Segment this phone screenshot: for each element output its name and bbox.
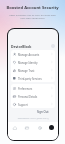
staticText: Manage Accounts xyxy=(18,53,40,56)
staticText: Manage Trust xyxy=(18,69,35,72)
button[interactable]: Account xyxy=(48,124,55,131)
staticText: Support xyxy=(18,103,28,106)
button[interactable]: Sign Out xyxy=(37,110,49,114)
button[interactable]: Home xyxy=(11,124,18,131)
button[interactable]: Manage Trust xyxy=(11,66,55,74)
button[interactable]: Support xyxy=(11,100,55,108)
button[interactable]: Profile xyxy=(51,44,55,48)
button[interactable]: Activity xyxy=(36,124,43,131)
button[interactable]: Preferences xyxy=(11,84,55,92)
staticText: Boosted Account Security xyxy=(6,5,59,11)
staticText: DeviceBlock xyxy=(11,44,32,49)
button[interactable]: Manage Identity xyxy=(11,58,55,66)
staticText: Manage Identity xyxy=(18,61,38,64)
button[interactable]: Personal Details xyxy=(11,92,55,100)
button[interactable]: Cards xyxy=(23,124,30,131)
staticText: Personal Details xyxy=(18,95,38,98)
staticText: Keep intruders out of your account with … xyxy=(9,13,56,20)
button[interactable]: Third-party Services xyxy=(11,74,55,82)
staticText: DeviceBlock v4.2.1 (build 3071) xyxy=(8,117,58,120)
button[interactable]: Manage Accounts xyxy=(11,50,55,58)
staticText: Preferences xyxy=(18,87,33,90)
staticText: Third-party Services xyxy=(18,77,42,80)
